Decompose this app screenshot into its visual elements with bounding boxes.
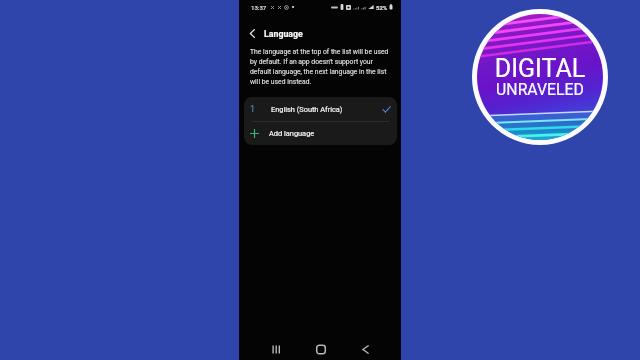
- button[interactable]: Recents: [267, 340, 285, 358]
- staticText: 13:37: [251, 4, 267, 11]
- staticText: DIGITAL: [472, 54, 608, 83]
- staticText: The language at the top of the list will…: [250, 48, 390, 85]
- button[interactable]: 1: [244, 97, 397, 121]
- staticText: Add language: [269, 129, 315, 138]
- staticText: 52%: [376, 4, 388, 11]
- button[interactable]: Back: [246, 27, 259, 40]
- button[interactable]: Home: [312, 340, 330, 358]
- staticText: UNRAVELED: [472, 80, 608, 99]
- staticText: Language: [264, 29, 303, 39]
- button[interactable]: Add language: [244, 122, 397, 145]
- staticText: 1: [250, 104, 256, 115]
- staticText: English (South Africa): [271, 105, 343, 114]
- button[interactable]: Back: [356, 340, 374, 358]
